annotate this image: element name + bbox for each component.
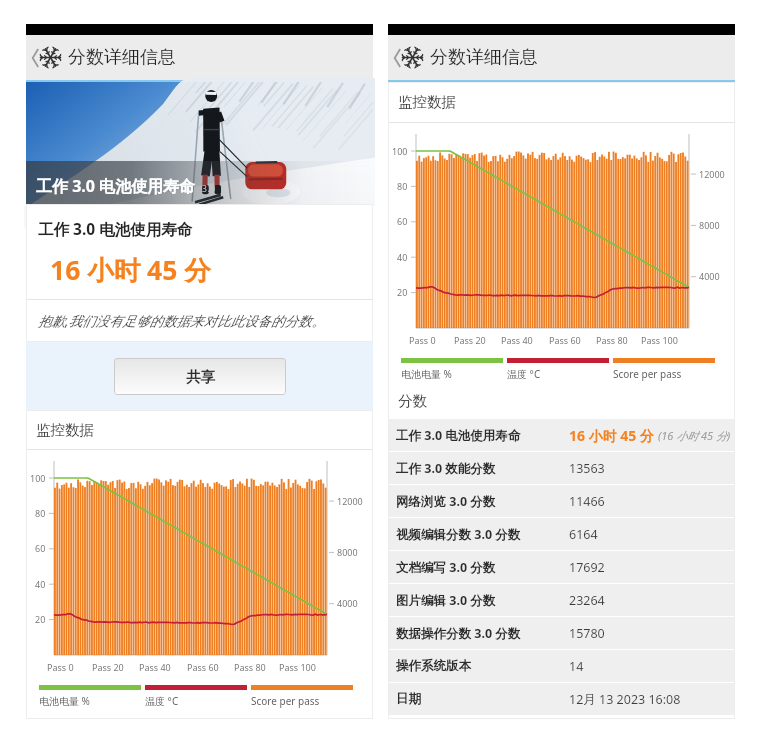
staticText: 网络浏览 3.0 分数 [396,493,496,510]
staticText: Pass 80 [234,661,266,673]
button[interactable]: 视频编辑分数 3.0 分数 [388,518,735,550]
staticText: Pass 20 [454,334,486,346]
button[interactable]: 操作系统版本 [388,650,735,682]
staticText: 日期 [396,691,421,707]
button[interactable]: 文档编写 3.0 分数 [388,551,735,583]
staticText: 15780 [569,625,605,642]
button[interactable]: 工作 3.0 电池使用寿命 [388,419,735,451]
staticText: 共享 [186,368,215,386]
staticText: 100 [392,145,408,157]
staticText: 40 [35,578,46,590]
staticText: Pass 40 [501,334,533,346]
staticText: Pass 0 [47,661,74,673]
staticText: 工作 3.0 电池使用寿命 [36,175,196,197]
staticText: Pass 0 [409,334,436,346]
staticText: Pass 60 [187,661,219,673]
staticText: 工作 3.0 电池使用寿命 [38,218,193,239]
staticText: 13563 [569,460,605,477]
staticText: 4000 [699,270,720,282]
staticText: 温度 °C [145,694,179,708]
staticText: 12000 [699,168,725,180]
staticText: 分数 [398,392,427,410]
staticText: Pass 20 [92,661,124,673]
button[interactable]: 图片编辑 3.0 分数 [388,584,735,616]
staticText: Pass 60 [549,334,581,346]
button[interactable]: 数据操作分数 3.0 分数 [388,617,735,649]
staticText: 80 [397,180,408,192]
staticText: 8000 [699,219,720,231]
staticText: 监控数据 [36,421,94,439]
staticText: 抱歉,我们没有足够的数据来对比此设备的分数。 [38,312,325,330]
staticText: 温度 °C [507,367,541,381]
staticText: 电池电量 % [401,367,452,381]
staticText: Pass 100 [641,334,678,346]
staticText: 23264 [569,592,605,609]
staticText: 40 [397,251,408,263]
staticText: 操作系统版本 [396,658,471,674]
staticText: Pass 40 [139,661,171,673]
staticText: 8000 [337,546,358,558]
staticText: 17692 [569,559,605,576]
staticText: (16 小时 45 分) [658,428,731,443]
staticText: 20 [397,286,408,298]
staticText: 12000 [337,495,363,507]
staticText: 80 [35,507,46,519]
button[interactable]: 网络浏览 3.0 分数 [388,485,735,517]
staticText: Score per pass [251,694,320,708]
staticText: 数据操作分数 3.0 分数 [396,625,521,642]
staticText: 4000 [337,597,358,609]
staticText: 20 [35,613,46,625]
staticText: Score per pass [613,367,682,381]
staticText: 14 [569,658,584,675]
staticText: 60 [397,215,408,227]
staticText: 工作 3.0 效能分数 [396,460,496,477]
button[interactable]: 工作 3.0 效能分数 [388,452,735,484]
staticText: 6164 [569,526,598,543]
staticText: 16 小时 45 分 [50,252,211,288]
staticText: Pass 80 [596,334,628,346]
staticText: 16 小时 45 分 [569,426,654,445]
staticText: 监控数据 [398,93,456,111]
staticText: 电池电量 % [39,694,90,708]
staticText: 文档编写 3.0 分数 [396,559,496,576]
button[interactable]: Back [30,43,63,72]
staticText: Pass 100 [279,661,316,673]
button[interactable]: 共享 [114,358,286,395]
staticText: 工作 3.0 电池使用寿命 [396,427,521,444]
staticText: 100 [30,472,46,484]
staticText: 视频编辑分数 3.0 分数 [396,526,521,543]
staticText: 60 [35,542,46,554]
staticText: 12月 13 2023 16:08 [569,691,681,708]
button[interactable]: 日期 [388,683,735,715]
staticText: 图片编辑 3.0 分数 [396,592,496,609]
staticText: 分数详细信息 [68,46,176,69]
button[interactable]: Back [392,43,425,72]
staticText: 分数详细信息 [430,46,538,69]
staticText: 3.0 [202,183,216,195]
staticText: 11466 [569,493,605,510]
